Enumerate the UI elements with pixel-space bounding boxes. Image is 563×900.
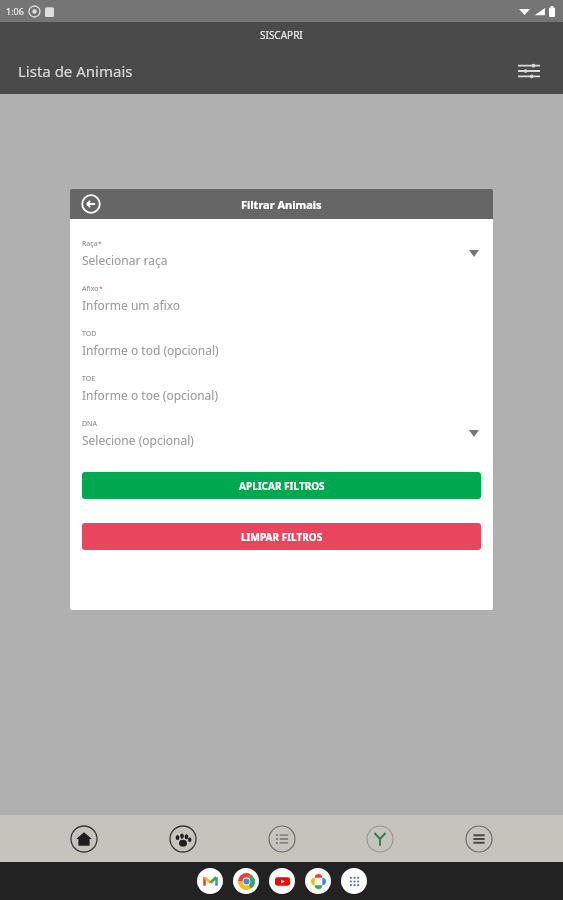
button[interactable]: APLICAR FILTROS bbox=[82, 472, 481, 499]
staticText: Informe um afixo bbox=[82, 297, 181, 313]
staticText: LIMPAR FILTROS bbox=[241, 530, 323, 544]
button[interactable]: Apps bbox=[341, 868, 367, 894]
button[interactable]: Animais bbox=[168, 824, 198, 854]
button[interactable]: Menu bbox=[464, 824, 494, 854]
button[interactable]: Voltar bbox=[78, 191, 104, 217]
button[interactable]: YouTube bbox=[269, 868, 295, 894]
button[interactable]: TOE bbox=[82, 374, 481, 403]
staticText: SISCAPRI bbox=[260, 28, 303, 42]
button[interactable]: Raça bbox=[82, 239, 481, 268]
staticText: Selecione (opcional) bbox=[82, 432, 194, 448]
staticText: Filtrar Animais bbox=[241, 197, 322, 212]
staticText: Informe o tod (opcional) bbox=[82, 342, 219, 358]
staticText: 1:06 bbox=[6, 5, 24, 17]
staticText: TOE bbox=[82, 374, 96, 384]
button[interactable]: Afixo bbox=[82, 284, 481, 313]
button[interactable]: DNA bbox=[82, 419, 481, 448]
staticText: APLICAR FILTROS bbox=[239, 479, 325, 493]
button[interactable]: Início bbox=[69, 824, 99, 854]
staticText: Lista de Animais bbox=[18, 61, 133, 81]
button[interactable]: Filtrar bbox=[509, 51, 549, 91]
button[interactable]: Chrome bbox=[233, 868, 259, 894]
staticText: DNA bbox=[82, 419, 97, 429]
staticText: Raça bbox=[82, 239, 98, 249]
staticText: Informe o toe (opcional) bbox=[82, 387, 218, 403]
button[interactable]: TOD bbox=[82, 329, 481, 358]
button[interactable]: Lista bbox=[267, 824, 297, 854]
button[interactable]: Photos bbox=[305, 868, 331, 894]
staticText: * bbox=[99, 284, 103, 294]
button[interactable]: LIMPAR FILTROS bbox=[82, 523, 481, 550]
staticText: Afixo bbox=[82, 284, 99, 294]
button[interactable]: Genealogia bbox=[365, 824, 395, 854]
button[interactable]: Gmail bbox=[197, 868, 223, 894]
staticText: Selecionar raça bbox=[82, 252, 168, 268]
staticText: TOD bbox=[82, 329, 97, 339]
staticText: * bbox=[98, 239, 102, 249]
